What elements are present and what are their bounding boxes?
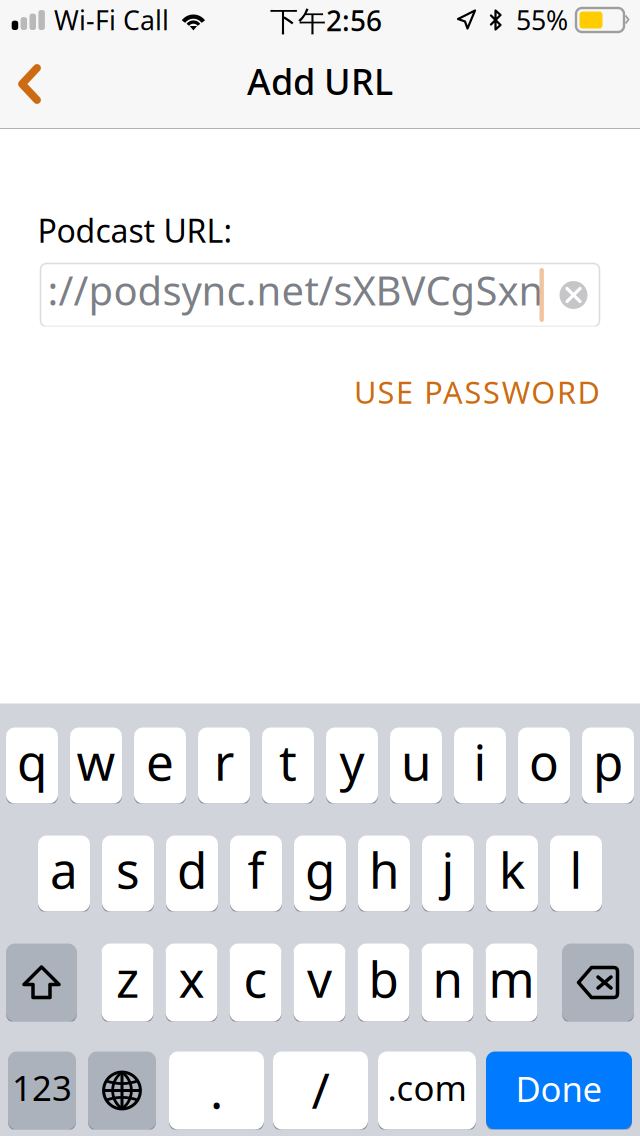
staticText: USE PASSWORD [354, 371, 599, 412]
staticText: Wi-Fi Call [54, 2, 169, 38]
button[interactable]: Shift [6, 943, 77, 1021]
button[interactable]: t [262, 727, 314, 803]
button[interactable]: Back [0, 40, 62, 128]
button[interactable]: f [230, 835, 282, 911]
staticText: . [210, 1057, 223, 1122]
button[interactable]: o [518, 727, 570, 803]
staticText: w [76, 729, 115, 794]
button[interactable]: 123 [8, 1051, 76, 1129]
staticText: q [17, 729, 47, 794]
button[interactable]: p [582, 727, 634, 803]
staticText: .com [387, 1064, 466, 1110]
staticText: s [116, 837, 140, 902]
staticText: m [488, 946, 534, 1011]
staticText: e [146, 729, 174, 794]
button[interactable]: Clear text [559, 281, 587, 309]
staticText: p [593, 729, 623, 794]
staticText: v [307, 946, 332, 1011]
button[interactable]: k [486, 835, 538, 911]
staticText: n [432, 946, 462, 1011]
staticText: r [214, 729, 234, 794]
button[interactable]: q [6, 727, 58, 803]
button[interactable]: n [421, 943, 473, 1021]
staticText: 123 [12, 1064, 72, 1110]
staticText: k [499, 837, 525, 902]
button[interactable]: r [198, 727, 250, 803]
button[interactable]: e [134, 727, 186, 803]
staticText: g [305, 837, 335, 902]
staticText: Podcast URL: [37, 209, 232, 251]
button[interactable]: USE PASSWORD [340, 361, 599, 422]
staticText: Add URL [247, 57, 393, 105]
button[interactable]: z [101, 943, 153, 1021]
button[interactable]: w [70, 727, 122, 803]
button[interactable]: / [273, 1051, 368, 1129]
staticText: x [178, 946, 204, 1011]
staticText: j [441, 837, 454, 902]
staticText: f [247, 837, 264, 902]
staticText: i [473, 729, 486, 794]
button[interactable]: Next keyboard [88, 1051, 156, 1129]
button[interactable]: j [422, 835, 474, 911]
button[interactable]: u [390, 727, 442, 803]
button[interactable]: d [166, 835, 218, 911]
staticText: t [279, 729, 297, 794]
button[interactable]: Delete [562, 943, 634, 1021]
button[interactable]: h [358, 835, 410, 911]
button[interactable]: m [485, 943, 537, 1021]
staticText: / [311, 1057, 329, 1122]
staticText: h [369, 837, 399, 902]
staticText: a [50, 837, 78, 902]
button[interactable]: x [165, 943, 217, 1021]
staticText: d [177, 837, 207, 902]
staticText: b [368, 946, 398, 1011]
staticText: c [243, 946, 267, 1011]
staticText: y [339, 729, 364, 794]
button[interactable]: v [293, 943, 345, 1021]
button[interactable]: c [229, 943, 281, 1021]
button[interactable]: b [357, 943, 409, 1021]
staticText: u [401, 729, 431, 794]
staticText: 55% [516, 2, 568, 38]
button[interactable]: y [326, 727, 378, 803]
button[interactable]: i [454, 727, 506, 803]
staticText: 下午2:56 [270, 2, 382, 39]
staticText: Done [515, 1065, 602, 1111]
staticText: ://podsync.net/sXBVCgSxn [47, 263, 543, 316]
button[interactable]: l [550, 835, 602, 911]
button[interactable]: ://podsync.net/sXBVCgSxn [40, 263, 599, 326]
staticText: o [529, 729, 559, 794]
button[interactable]: .com [378, 1051, 476, 1129]
staticText: l [569, 837, 582, 902]
button[interactable]: s [102, 835, 154, 911]
button[interactable]: g [294, 835, 346, 911]
button[interactable]: Done [486, 1051, 632, 1129]
button[interactable]: a [38, 835, 90, 911]
button[interactable]: . [169, 1051, 264, 1129]
staticText: z [116, 946, 139, 1011]
